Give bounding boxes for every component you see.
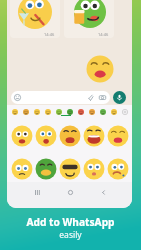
button[interactable]: Sticker cocktail bbox=[13, 0, 57, 30]
button[interactable]: Back bbox=[96, 185, 110, 199]
button[interactable]: Sticker kiss bbox=[86, 55, 114, 83]
button[interactable]: Sticker beer bbox=[69, 0, 111, 28]
button[interactable]: Recents bbox=[30, 185, 44, 199]
button[interactable]: Emoji 2 bbox=[58, 125, 82, 147]
button[interactable]: Category 2 bbox=[31, 105, 42, 118]
button[interactable]: Emoji 1 bbox=[34, 125, 58, 147]
button[interactable]: Emoji 0 bbox=[9, 125, 34, 147]
button[interactable]: Emoji 3 bbox=[82, 125, 106, 147]
button[interactable]: Emoji 9 bbox=[106, 158, 130, 180]
staticText: Add to WhatsApp bbox=[26, 215, 115, 229]
staticText: 14:46 bbox=[98, 32, 109, 37]
button[interactable]: Category 7 bbox=[86, 105, 97, 118]
button[interactable]: Category 9 bbox=[108, 105, 119, 118]
button[interactable]: Category 10 bbox=[119, 105, 130, 118]
button[interactable]: Category 1 bbox=[20, 105, 31, 118]
button[interactable]: Category 4 bbox=[53, 105, 64, 118]
button[interactable]: Category 8 bbox=[97, 105, 108, 118]
button[interactable]: Voice message bbox=[113, 91, 126, 104]
staticText: 14:46 bbox=[44, 32, 55, 37]
button[interactable]: Emoji 5 bbox=[9, 158, 34, 180]
staticText: easily bbox=[59, 229, 82, 241]
button[interactable]: Category 0 bbox=[9, 105, 20, 118]
button[interactable]: Category 3 bbox=[42, 105, 53, 118]
button[interactable]: Category 6 bbox=[75, 105, 86, 118]
button[interactable]: Category 5 bbox=[64, 105, 75, 118]
button[interactable]: Emoji 7 bbox=[58, 158, 82, 180]
button[interactable]: Home bbox=[63, 185, 77, 199]
button[interactable]: Message field bbox=[11, 91, 110, 104]
button[interactable]: Emoji 6 bbox=[34, 158, 58, 180]
button[interactable]: Emoji 4 bbox=[106, 125, 130, 147]
button[interactable]: Emoji 8 bbox=[82, 158, 106, 180]
